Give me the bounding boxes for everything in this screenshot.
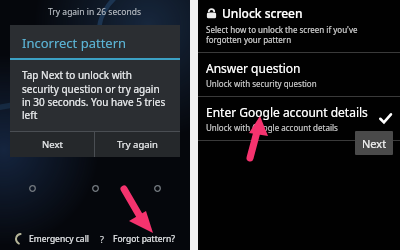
staticText: Try again: [117, 138, 158, 151]
staticText: Next: [42, 138, 63, 151]
staticText: Incorrect pattern: [22, 34, 127, 52]
staticText: ?: [100, 233, 104, 245]
button[interactable]: Answer question: [198, 53, 400, 96]
staticText: Tap Next to unlock with security questio…: [22, 68, 168, 122]
button[interactable]: Forgot pattern?: [111, 233, 178, 245]
button[interactable]: Try again: [95, 132, 180, 157]
staticText: Answer question: [206, 60, 301, 76]
staticText: Emergency call: [29, 233, 90, 245]
button[interactable]: Next: [10, 132, 94, 157]
staticText: Select how to unlock the screen if you'v…: [206, 24, 392, 45]
staticText: Unlock screen: [222, 5, 303, 21]
button[interactable]: Next: [355, 131, 393, 155]
staticText: Unlock with Google account details: [206, 122, 338, 133]
staticText: Enter Google account details: [206, 104, 368, 120]
staticText: Try again in 26 seconds: [48, 6, 142, 18]
other: Lock: [206, 8, 217, 19]
button[interactable]: Enter Google account details: [198, 97, 400, 140]
staticText: Forgot pattern?: [113, 233, 176, 245]
staticText: Unlock with security question: [206, 78, 317, 89]
button[interactable]: Emergency call: [13, 233, 93, 245]
staticText: Next: [362, 136, 387, 151]
